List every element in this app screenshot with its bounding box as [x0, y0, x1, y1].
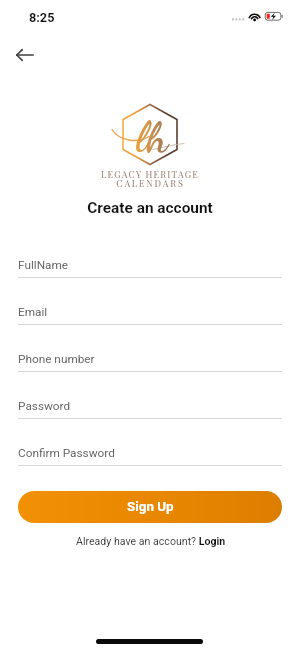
staticText: Confirm Password — [18, 446, 115, 460]
staticText: CALENDARS — [116, 177, 185, 189]
button[interactable]: Already have an account? Login — [76, 535, 226, 547]
staticText: Phone number — [18, 352, 95, 366]
button[interactable]: Sign Up — [18, 491, 282, 523]
button[interactable]: Email — [18, 295, 282, 342]
button[interactable]: Password — [18, 389, 282, 436]
button[interactable]: Confirm Password — [18, 436, 282, 483]
staticText: FullName — [18, 258, 69, 272]
staticText: Sign Up — [127, 499, 174, 515]
button[interactable]: Phone number — [18, 342, 282, 389]
staticText: Email — [18, 305, 48, 319]
staticText: LEGACY HERITAGE — [101, 168, 199, 180]
staticText: Already have an account? Login — [76, 535, 226, 547]
staticText: 8:25 — [29, 10, 55, 25]
staticText: lh — [136, 111, 168, 163]
button[interactable]: FullName — [18, 248, 282, 295]
staticText: Password — [18, 399, 71, 413]
button[interactable]: Back — [7, 37, 43, 73]
staticText: Create an account — [87, 199, 213, 217]
